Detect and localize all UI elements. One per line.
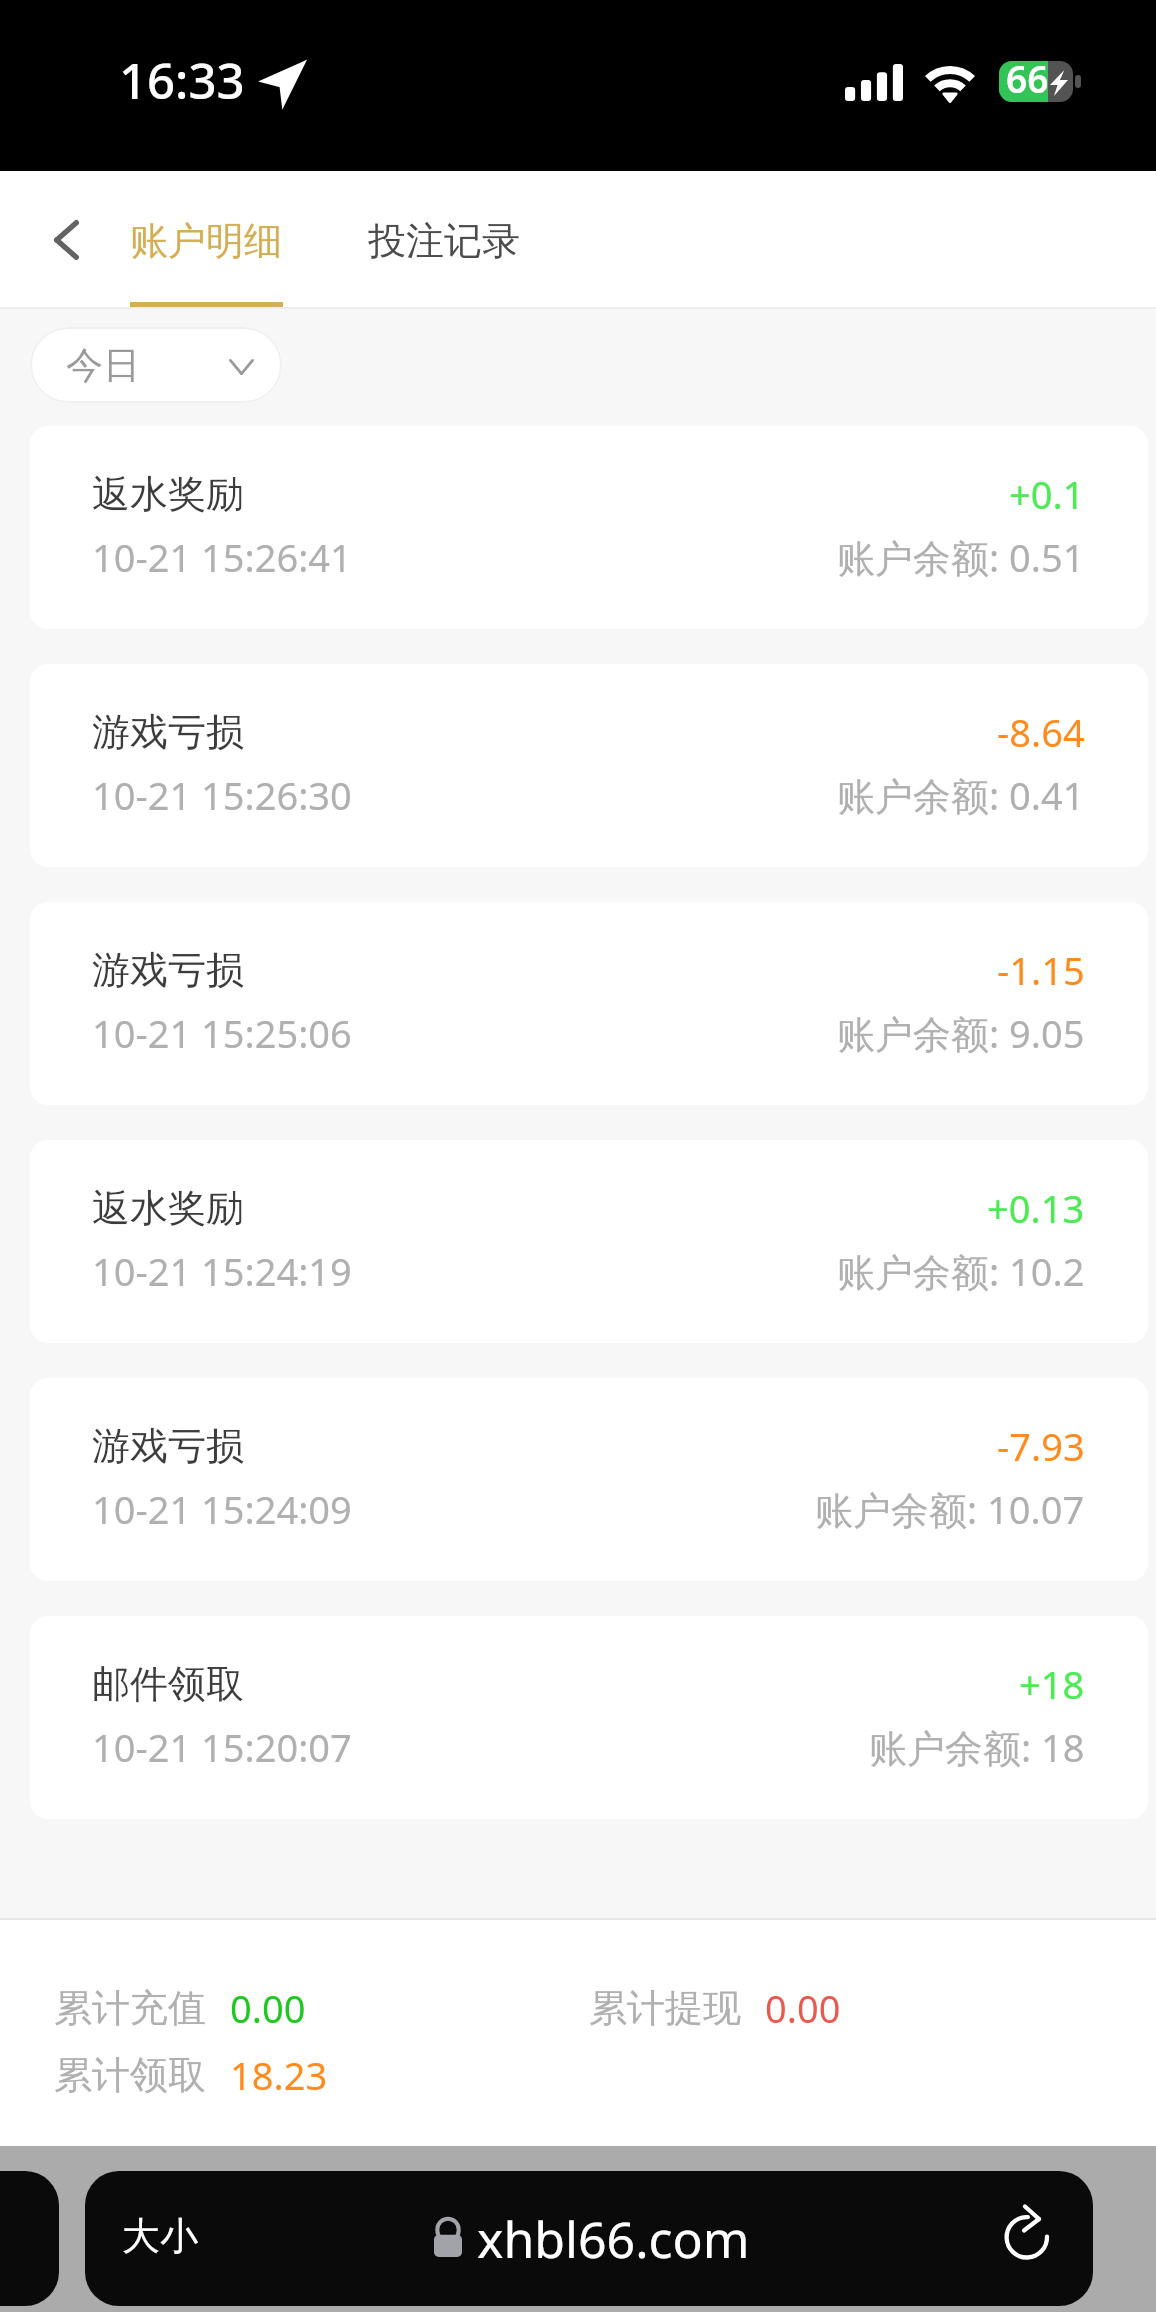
staticText: -1.15 <box>997 942 1085 997</box>
button[interactable]: 游戏亏损 <box>30 902 1148 1105</box>
staticText: 10-21 15:24:09 <box>92 1481 352 1536</box>
staticText: 10-21 15:25:06 <box>92 1005 352 1060</box>
staticText: 账户余额: 0.51 <box>837 529 1085 586</box>
staticText: 游戏亏损 <box>92 942 244 997</box>
button[interactable]: 返水奖励 <box>30 1140 1148 1343</box>
staticText: 0.00 <box>230 1980 306 2035</box>
staticText: 10-21 15:26:41 <box>92 529 352 584</box>
staticText: 账户余额: 10.2 <box>837 1243 1085 1300</box>
staticText: 返水奖励 <box>92 466 244 521</box>
staticText: 邮件领取 <box>92 1656 244 1711</box>
button[interactable]: 返水奖励 <box>30 426 1148 629</box>
button[interactable]: 大小 <box>85 2171 1093 2306</box>
staticText: -7.93 <box>997 1418 1085 1473</box>
staticText: 累计领取 <box>54 2047 206 2102</box>
staticText: 账户余额: 10.07 <box>815 1481 1085 1538</box>
button[interactable]: 游戏亏损 <box>30 664 1148 867</box>
staticText: 18.23 <box>230 2047 328 2102</box>
staticText: +0.1 <box>1009 466 1085 521</box>
staticText: 账户余额: 0.41 <box>837 767 1085 824</box>
button[interactable]: 游戏亏损 <box>30 1378 1148 1581</box>
staticText: +0.13 <box>987 1180 1085 1235</box>
staticText: 投注记录 <box>368 213 520 268</box>
staticText: 游戏亏损 <box>92 1418 244 1473</box>
staticText: 游戏亏损 <box>92 704 244 759</box>
staticText: 大小 <box>122 2208 198 2263</box>
staticText: 返水奖励 <box>92 1180 244 1235</box>
staticText: 66 <box>1006 61 1049 94</box>
staticText: xhbl66.com <box>477 2201 750 2273</box>
button[interactable]: Reload <box>980 2185 1070 2275</box>
button[interactable]: 投注记录 <box>368 171 520 307</box>
staticText: 今日 <box>66 338 140 392</box>
button[interactable]: 账户明细 <box>130 171 283 307</box>
staticText: 10-21 15:26:30 <box>92 767 352 822</box>
staticText: 账户明细 <box>130 213 282 268</box>
staticText: 累计充值 <box>54 1980 206 2035</box>
staticText: 16:33 <box>119 47 245 114</box>
staticText: 10-21 15:24:19 <box>92 1243 352 1298</box>
staticText: 10-21 15:20:07 <box>92 1719 352 1774</box>
button[interactable]: Back <box>34 200 100 280</box>
staticText: -8.64 <box>997 704 1085 759</box>
staticText: 账户余额: 18 <box>869 1719 1085 1776</box>
staticText: +18 <box>1019 1656 1085 1711</box>
button[interactable]: 邮件领取 <box>30 1616 1148 1819</box>
staticText: 累计提现 <box>589 1980 741 2035</box>
button[interactable]: 今日 <box>30 327 282 403</box>
staticText: 账户余额: 9.05 <box>837 1005 1085 1062</box>
staticText: 0.00 <box>765 1980 841 2035</box>
